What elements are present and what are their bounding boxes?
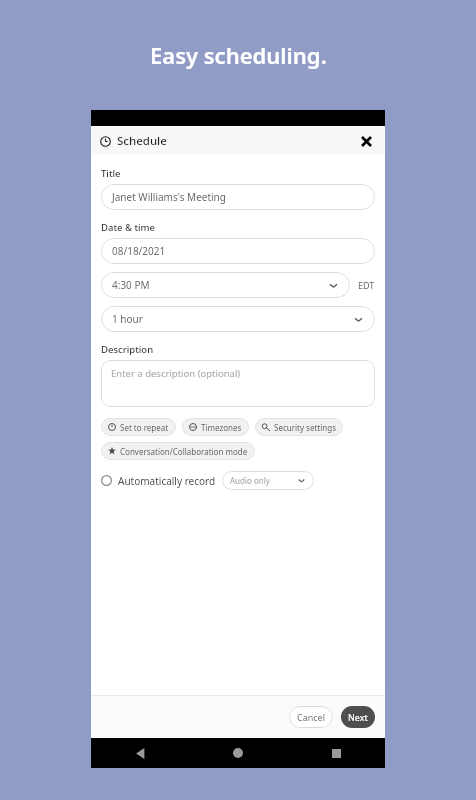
staticText: 4:30 PM	[112, 278, 150, 292]
staticText: Enter a description (optional)	[111, 367, 241, 380]
staticText: Easy scheduling.	[150, 40, 327, 70]
staticText: Schedule	[117, 133, 167, 149]
staticText: Automatically record	[118, 474, 216, 488]
button[interactable]: Recents	[287, 738, 385, 768]
staticText: Date & time	[101, 221, 156, 234]
button[interactable]: Home	[189, 738, 287, 768]
button[interactable]: Audio only	[222, 471, 314, 490]
button[interactable]: Back	[91, 738, 189, 768]
button[interactable]: 08/18/2021	[101, 238, 375, 264]
button[interactable]: Security settings	[255, 418, 343, 436]
button[interactable]: Janet Williams's Meeting	[101, 184, 375, 210]
button[interactable]: Schedule	[100, 133, 167, 149]
button[interactable]: Cancel	[289, 706, 333, 728]
staticText: 1 hour	[112, 312, 143, 326]
button[interactable]: Close	[355, 130, 377, 152]
staticText: Janet Williams's Meeting	[112, 190, 226, 204]
staticText: Description	[101, 343, 154, 356]
staticText: Audio only	[230, 475, 270, 486]
button[interactable]: Set to repeat	[101, 418, 176, 436]
button[interactable]: Enter a description (optional)	[101, 360, 375, 407]
staticText: Conversation/Collaboration mode	[120, 446, 248, 457]
staticText: Timezones	[201, 422, 242, 433]
button[interactable]: 1 hour	[101, 306, 375, 332]
button[interactable]: Next	[341, 706, 375, 728]
staticText: Security settings	[274, 422, 336, 433]
staticText: 08/18/2021	[112, 244, 166, 258]
button[interactable]: 4:30 PM	[101, 272, 350, 298]
button[interactable]: Timezones	[182, 418, 249, 436]
staticText: Title	[101, 167, 121, 180]
button[interactable]: Automatically record	[101, 471, 314, 490]
staticText: Next	[348, 711, 368, 723]
button[interactable]: Conversation/Collaboration mode	[101, 442, 255, 460]
staticText: Cancel	[297, 711, 326, 723]
staticText: Set to repeat	[120, 422, 169, 433]
staticText: EDT	[358, 279, 375, 291]
